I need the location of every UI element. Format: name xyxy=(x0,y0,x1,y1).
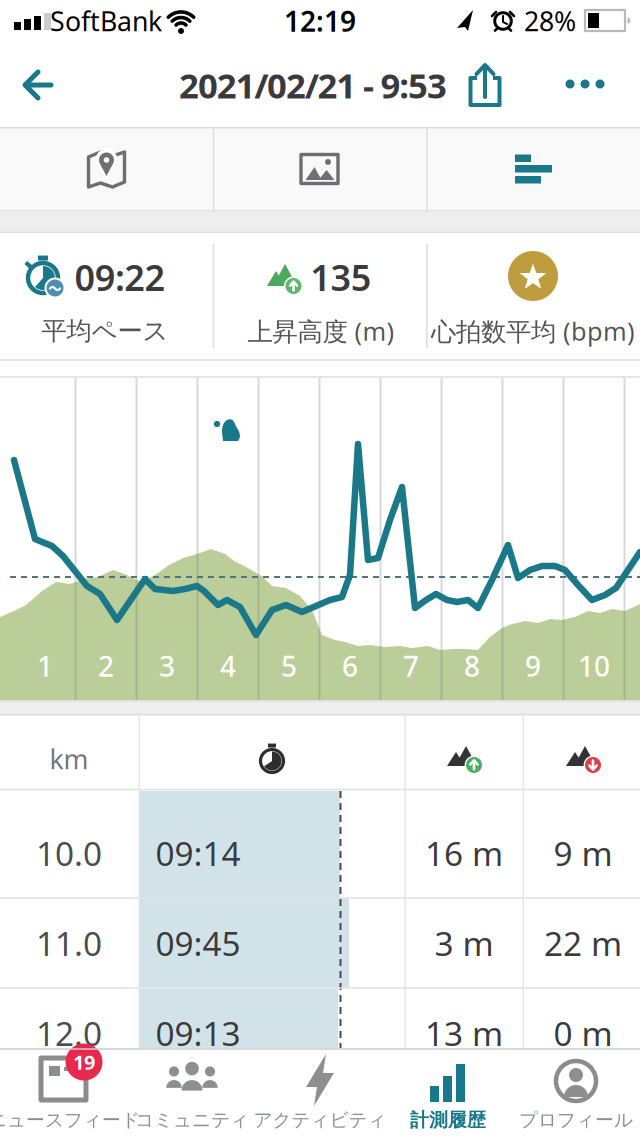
button[interactable]: Back xyxy=(3,50,73,120)
button[interactable]: Share xyxy=(453,49,517,121)
staticText: 心拍数平均 (bpm) xyxy=(431,314,635,348)
button[interactable]: Charts xyxy=(427,127,640,211)
staticText: 1 xyxy=(37,647,53,685)
staticText: km xyxy=(49,741,88,777)
button[interactable]: 計測履歴 xyxy=(384,1050,512,1136)
staticText: SoftBank xyxy=(50,3,162,39)
button[interactable]: プロフィール xyxy=(512,1050,640,1136)
staticText: 11.0 xyxy=(36,921,102,965)
button[interactable]: コミュニティ xyxy=(128,1050,256,1136)
button[interactable]: ニュースフィード xyxy=(0,1050,128,1136)
staticText: 0 m xyxy=(553,1011,612,1055)
staticText: 10 xyxy=(578,647,610,685)
staticText: 平均ペース xyxy=(41,315,168,346)
staticText: 3 xyxy=(159,647,175,685)
staticText: アクティビティ xyxy=(253,1108,386,1131)
staticText: 10.0 xyxy=(36,831,102,875)
staticText: 7 xyxy=(403,647,419,685)
staticText: 09:45 xyxy=(155,921,240,965)
button[interactable]: More xyxy=(553,49,617,119)
staticText: 12.0 xyxy=(36,1011,102,1055)
staticText: 3 m xyxy=(434,921,493,965)
staticText: 6 xyxy=(342,647,358,685)
staticText: 5 xyxy=(281,647,297,685)
staticText: 09:13 xyxy=(155,1011,240,1055)
staticText: 13 m xyxy=(425,1011,503,1055)
button[interactable]: Map xyxy=(0,127,213,211)
staticText: 09:22 xyxy=(75,253,165,301)
staticText: 09:14 xyxy=(155,831,240,875)
staticText: ニュースフィード xyxy=(0,1108,140,1131)
staticText: 9 m xyxy=(553,831,612,875)
staticText: 上昇高度 (m) xyxy=(247,314,394,348)
staticText: 8 xyxy=(464,647,480,685)
staticText: 19 xyxy=(73,1049,95,1075)
staticText: コミュニティ xyxy=(135,1108,249,1131)
staticText: 135 xyxy=(310,253,372,301)
staticText: 16 m xyxy=(425,831,503,875)
button[interactable]: Photos xyxy=(213,127,427,211)
staticText: 22 m xyxy=(544,921,622,965)
staticText: 4 xyxy=(220,647,236,685)
staticText: 2021/02/21 - 9:53 xyxy=(179,62,447,108)
staticText: プロフィール xyxy=(519,1108,633,1131)
staticText: 28% xyxy=(524,3,576,39)
staticText: 9 xyxy=(525,647,541,685)
staticText: 2 xyxy=(98,647,114,685)
button[interactable]: アクティビティ xyxy=(256,1050,384,1136)
staticText: 12:19 xyxy=(284,2,356,40)
staticText: 計測履歴 xyxy=(410,1108,486,1131)
